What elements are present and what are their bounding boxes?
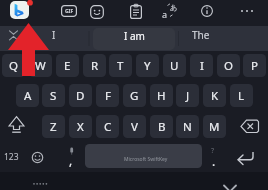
button[interactable]: I	[190, 54, 213, 77]
button[interactable]: 123	[0, 145, 22, 169]
staticText: I	[52, 28, 56, 42]
button[interactable]	[10, 1, 29, 19]
button[interactable]: W	[29, 54, 52, 77]
staticText: C	[104, 119, 112, 135]
staticText: E	[64, 58, 71, 74]
staticText: U	[170, 58, 179, 74]
staticText: ,	[69, 152, 73, 168]
staticText: M	[209, 119, 220, 135]
staticText: .	[212, 153, 216, 169]
button[interactable]: I	[24, 25, 84, 45]
button[interactable]	[228, 144, 254, 168]
button[interactable]	[90, 5, 104, 19]
button[interactable]: ?	[204, 144, 224, 168]
button[interactable]: G	[123, 84, 146, 107]
staticText: A	[24, 88, 32, 104]
button[interactable]: P	[243, 54, 266, 77]
button[interactable]: H	[150, 84, 173, 107]
staticText: N	[183, 119, 192, 135]
button[interactable]	[240, 9, 254, 13]
staticText: G	[130, 88, 139, 104]
staticText: H	[157, 88, 166, 104]
button[interactable]: ,	[61, 144, 81, 168]
button[interactable]: K	[203, 84, 226, 107]
button[interactable]: N	[176, 115, 199, 138]
button[interactable]: U	[163, 54, 186, 77]
staticText: あ	[170, 3, 178, 12]
staticText: ?	[211, 146, 215, 156]
button[interactable]	[200, 4, 214, 18]
staticText: GIF	[65, 8, 74, 15]
button[interactable]: GIF	[61, 5, 77, 17]
staticText: W	[35, 58, 46, 74]
staticText: Microsoft SwiftKey	[124, 156, 168, 163]
staticText: I	[200, 58, 204, 74]
button[interactable]	[130, 4, 142, 19]
button[interactable]: A	[16, 84, 39, 107]
staticText: a	[162, 8, 168, 20]
button[interactable]: J	[176, 84, 199, 107]
staticText: Q	[9, 58, 18, 74]
staticText: I am	[124, 29, 145, 43]
staticText: Z	[50, 119, 57, 135]
staticText: F	[105, 88, 111, 104]
staticText: R	[91, 58, 99, 74]
button[interactable]: R	[83, 54, 106, 77]
button[interactable]: Microsoft SwiftKey	[85, 144, 202, 168]
staticText: L	[238, 88, 245, 104]
button[interactable]: F	[96, 84, 119, 107]
button[interactable]: B	[150, 115, 173, 138]
staticText: O	[224, 58, 233, 74]
button[interactable]: T	[109, 54, 132, 77]
button[interactable]: E	[56, 54, 79, 77]
button[interactable]: The	[171, 25, 231, 45]
button[interactable]: Q	[2, 54, 25, 77]
staticText: J	[186, 88, 190, 104]
button[interactable]: L	[230, 84, 253, 107]
button[interactable]	[2, 114, 32, 138]
button[interactable]: C	[96, 115, 119, 138]
button[interactable]: M	[203, 115, 226, 138]
button[interactable]: I am	[93, 28, 175, 50]
staticText: K	[211, 88, 219, 104]
button[interactable]: V	[123, 115, 146, 138]
staticText: X	[77, 119, 84, 135]
staticText: B	[158, 119, 166, 135]
button[interactable]	[222, 184, 238, 190]
staticText: S	[50, 88, 57, 104]
staticText: D	[76, 88, 85, 104]
button[interactable]: O	[217, 54, 240, 77]
button[interactable]: Z	[42, 115, 65, 138]
staticText: The	[192, 28, 210, 42]
button[interactable]: Y	[136, 54, 159, 77]
staticText: Y	[144, 58, 151, 74]
button[interactable]: S	[42, 84, 65, 107]
staticText: P	[251, 58, 258, 74]
button[interactable]: X	[69, 115, 92, 138]
button[interactable]	[29, 149, 46, 166]
staticText: 123	[4, 151, 19, 163]
button[interactable]: a	[161, 3, 178, 19]
button[interactable]	[233, 114, 263, 138]
button[interactable]: D	[69, 84, 92, 107]
staticText: T	[117, 58, 124, 74]
staticText: V	[131, 119, 138, 135]
